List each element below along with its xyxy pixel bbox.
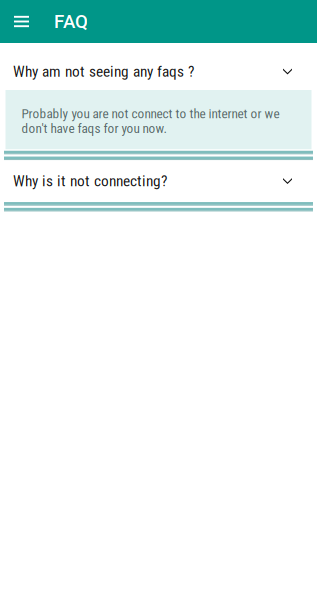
staticText: don't have faqs for you now. (21, 121, 167, 136)
staticText: FAQ (54, 11, 88, 32)
button[interactable]: Why am not seeing any faqs ? (0, 43, 317, 90)
staticText: Why is it not connecting? (13, 172, 167, 190)
button[interactable]: Why is it not connecting? (0, 160, 317, 202)
staticText: Probably you are not connect to the inte… (21, 106, 279, 122)
staticText: Why am not seeing any faqs ? (13, 62, 194, 80)
button[interactable]: Menu (6, 0, 37, 43)
